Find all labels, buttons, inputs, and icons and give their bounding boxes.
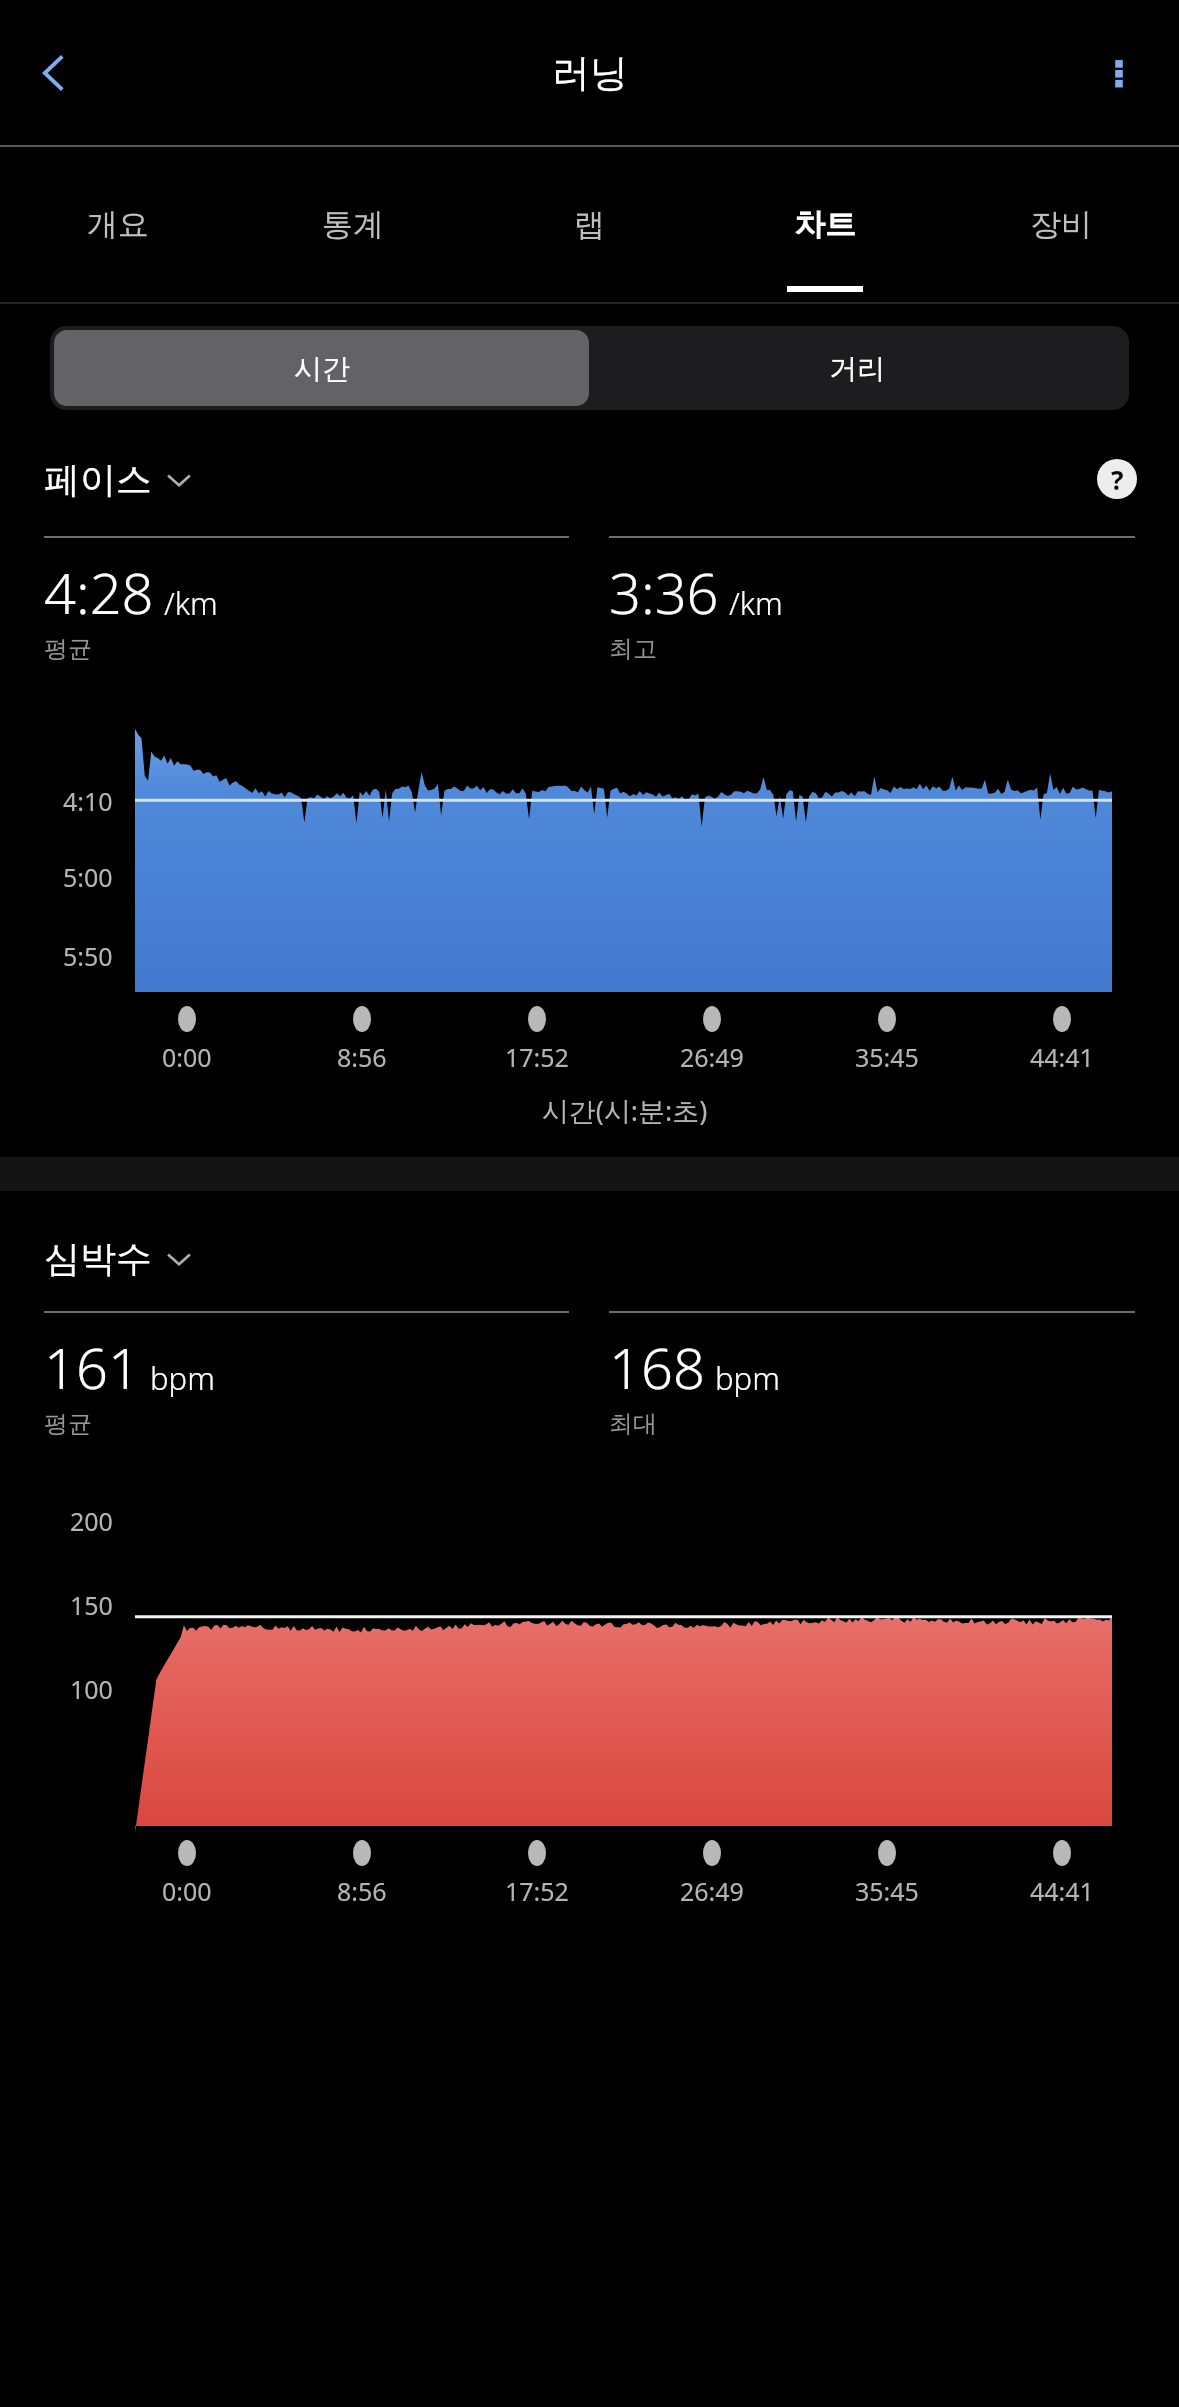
button[interactable]: 통계	[235, 147, 471, 302]
staticText: 26:49	[680, 1874, 744, 1908]
staticText: 장비	[1030, 205, 1092, 244]
button[interactable]: 심박수	[44, 1236, 192, 1281]
staticText: 35:45	[855, 1874, 919, 1908]
staticText: 100	[70, 1672, 113, 1706]
staticText: 168	[609, 1329, 705, 1405]
staticText: 35:45	[855, 1040, 919, 1074]
staticText: bpm	[150, 1357, 215, 1399]
staticText: 200	[70, 1504, 113, 1538]
button[interactable]: 장비	[943, 147, 1179, 302]
staticText: 시간	[294, 351, 350, 386]
staticText: 17:52	[505, 1040, 569, 1074]
staticText: ?	[1111, 462, 1124, 497]
button[interactable]: Help	[1091, 453, 1143, 505]
staticText: 5:50	[63, 939, 113, 973]
staticText: 평균	[44, 634, 92, 664]
staticText: 4:10	[63, 784, 113, 818]
button[interactable]: 거리	[589, 330, 1125, 406]
staticText: 5:00	[63, 860, 113, 894]
staticText: /km	[164, 582, 218, 624]
button[interactable]: 시간	[54, 330, 589, 406]
staticText: 최고	[609, 634, 657, 664]
staticText: 심박수	[44, 1236, 152, 1281]
staticText: 26:49	[680, 1040, 744, 1074]
staticText: 개요	[87, 205, 149, 244]
staticText: 44:41	[1030, 1874, 1094, 1908]
staticText: 평균	[44, 1409, 92, 1439]
staticText: 랩	[574, 205, 605, 244]
staticText: 러닝	[552, 49, 628, 97]
staticText: 8:56	[337, 1874, 387, 1908]
staticText: 최대	[609, 1409, 657, 1439]
button[interactable]: 차트	[707, 147, 943, 302]
staticText: 통계	[322, 205, 384, 244]
staticText: 17:52	[505, 1874, 569, 1908]
staticText: 3:36	[609, 554, 719, 630]
staticText: 150	[70, 1588, 113, 1622]
staticText: 8:56	[337, 1040, 387, 1074]
staticText: /km	[729, 582, 783, 624]
staticText: 161	[44, 1329, 140, 1405]
button[interactable]: More options	[1077, 31, 1161, 115]
staticText: 4:28	[44, 554, 154, 630]
staticText: bpm	[715, 1357, 780, 1399]
staticText: 시간(시:분:초)	[100, 1092, 1149, 1129]
staticText: 44:41	[1030, 1040, 1094, 1074]
staticText: 거리	[829, 351, 885, 386]
staticText: 0:00	[162, 1040, 212, 1074]
button[interactable]: 랩	[471, 147, 707, 302]
button[interactable]: 개요	[0, 147, 235, 302]
button[interactable]: 페이스	[44, 457, 192, 502]
staticText: 페이스	[44, 457, 152, 502]
staticText: 차트	[794, 205, 856, 244]
button[interactable]: Back	[12, 31, 96, 115]
staticText: 0:00	[162, 1874, 212, 1908]
